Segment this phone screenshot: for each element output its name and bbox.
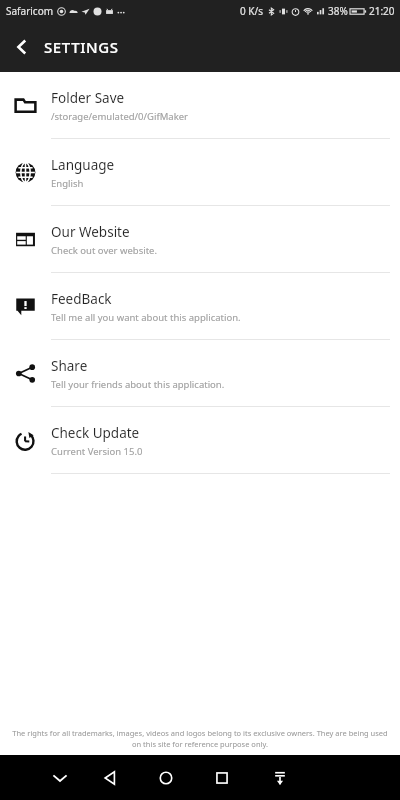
staticText: Folder Save: [51, 89, 125, 107]
staticText: FeedBack: [51, 290, 112, 308]
staticText: Check out over website.: [51, 244, 157, 257]
staticText: SETTINGS: [44, 37, 119, 57]
staticText: 21:20: [369, 4, 395, 18]
button[interactable]: Back: [90, 758, 130, 798]
button[interactable]: Language: [0, 139, 400, 206]
staticText: Current Version 15.0: [51, 445, 143, 458]
staticText: Our Website: [51, 223, 130, 241]
staticText: /storage/emulated/0/GifMaker: [51, 110, 189, 123]
button[interactable]: Share: [0, 340, 400, 407]
staticText: Share: [51, 357, 88, 375]
button[interactable]: Recent apps: [202, 758, 242, 798]
button[interactable]: Hide keyboard: [40, 758, 80, 798]
button[interactable]: Folder Save: [0, 72, 400, 139]
button[interactable]: Check Update: [0, 407, 400, 474]
button[interactable]: Our Website: [0, 206, 400, 273]
staticText: Language: [51, 156, 115, 174]
button[interactable]: FeedBack: [0, 273, 400, 340]
staticText: English: [51, 177, 84, 190]
staticText: Safaricom: [6, 4, 54, 18]
button[interactable]: Collapse: [260, 758, 300, 798]
staticText: Check Update: [51, 424, 140, 442]
staticText: Tell your friends about this application…: [51, 378, 225, 391]
staticText: The rights for all trademarks, images, v…: [8, 728, 392, 749]
staticText: Tell me all you want about this applicat…: [51, 311, 241, 324]
button[interactable]: Home: [146, 758, 186, 798]
button[interactable]: Back: [0, 25, 44, 69]
staticText: 38%: [328, 4, 348, 18]
staticText: 0 K/s: [240, 4, 264, 18]
